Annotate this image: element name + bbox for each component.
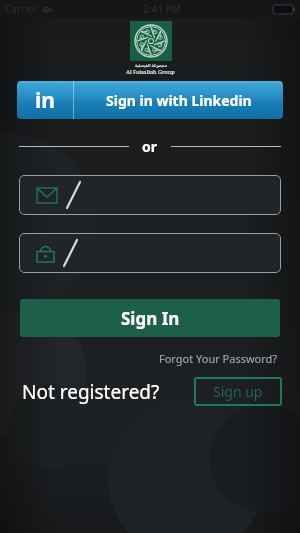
staticText: Carrier: [5, 2, 38, 16]
button[interactable]: [19, 233, 281, 273]
staticText: مجموعة الفيصلية: [135, 62, 167, 68]
staticText: Forgot Your Password?: [159, 351, 278, 366]
staticText: Sign up: [213, 382, 263, 401]
staticText: Not registered?: [22, 379, 160, 405]
button[interactable]: [19, 175, 281, 215]
staticText: or: [142, 137, 158, 156]
staticText: Sign in with Linkedin: [106, 91, 252, 110]
staticText: 2:41 PM: [143, 2, 181, 16]
button[interactable]: Sign up: [194, 377, 282, 406]
staticText: Sign In: [121, 307, 180, 330]
staticText: Al Faisaliah Group: [126, 68, 175, 75]
button[interactable]: Forgot Your Password?: [155, 347, 282, 370]
button[interactable]: Sign In: [20, 299, 280, 337]
button[interactable]: in: [17, 81, 283, 119]
staticText: in: [35, 86, 55, 115]
